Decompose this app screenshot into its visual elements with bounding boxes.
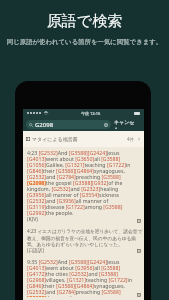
other: Share verse: [137, 219, 141, 223]
other: Share verse: [137, 293, 141, 297]
staticText: キャンセル: [114, 119, 138, 129]
button[interactable]: 4:23 [G2532]And [G3588][G2424]Jesus [G40…: [23, 147, 144, 226]
button[interactable]: キャンセル: [111, 117, 140, 131]
staticText: 4:23 イエスはガリラヤの全地を巡り歩いて、諸会堂で教え、御国の福音を宣べ伝え…: [27, 228, 143, 253]
staticText: 原語で検索: [0, 12, 169, 31]
staticText: 4:23 [G2532]And [G3588][G2424]Jesus [G40…: [27, 149, 143, 223]
staticText: 午後 12:16: [81, 111, 101, 116]
staticText: 9:35 [G2532]And [G3588][G2424]Jesus [G40…: [27, 258, 143, 297]
button[interactable]: G2098: [26, 120, 111, 129]
staticText: 同じ原語が使われている箇所を一気に閲覧できます。: [0, 38, 169, 46]
other: Share verse: [137, 249, 141, 253]
button[interactable]: マタイによる福音書: [23, 131, 144, 147]
staticText: G2098: [35, 121, 54, 129]
button[interactable]: 4:23 イエスはガリラヤの全地を巡り歩いて、諸会堂で教え、御国の福音を宣べ伝え…: [23, 226, 144, 256]
staticText: マタイによる福音書: [32, 136, 78, 142]
button[interactable]: 9:35 [G2532]And [G3588][G2424]Jesus [G40…: [23, 256, 144, 300]
other: Open: [137, 137, 141, 141]
staticText: 4件: [127, 136, 135, 142]
